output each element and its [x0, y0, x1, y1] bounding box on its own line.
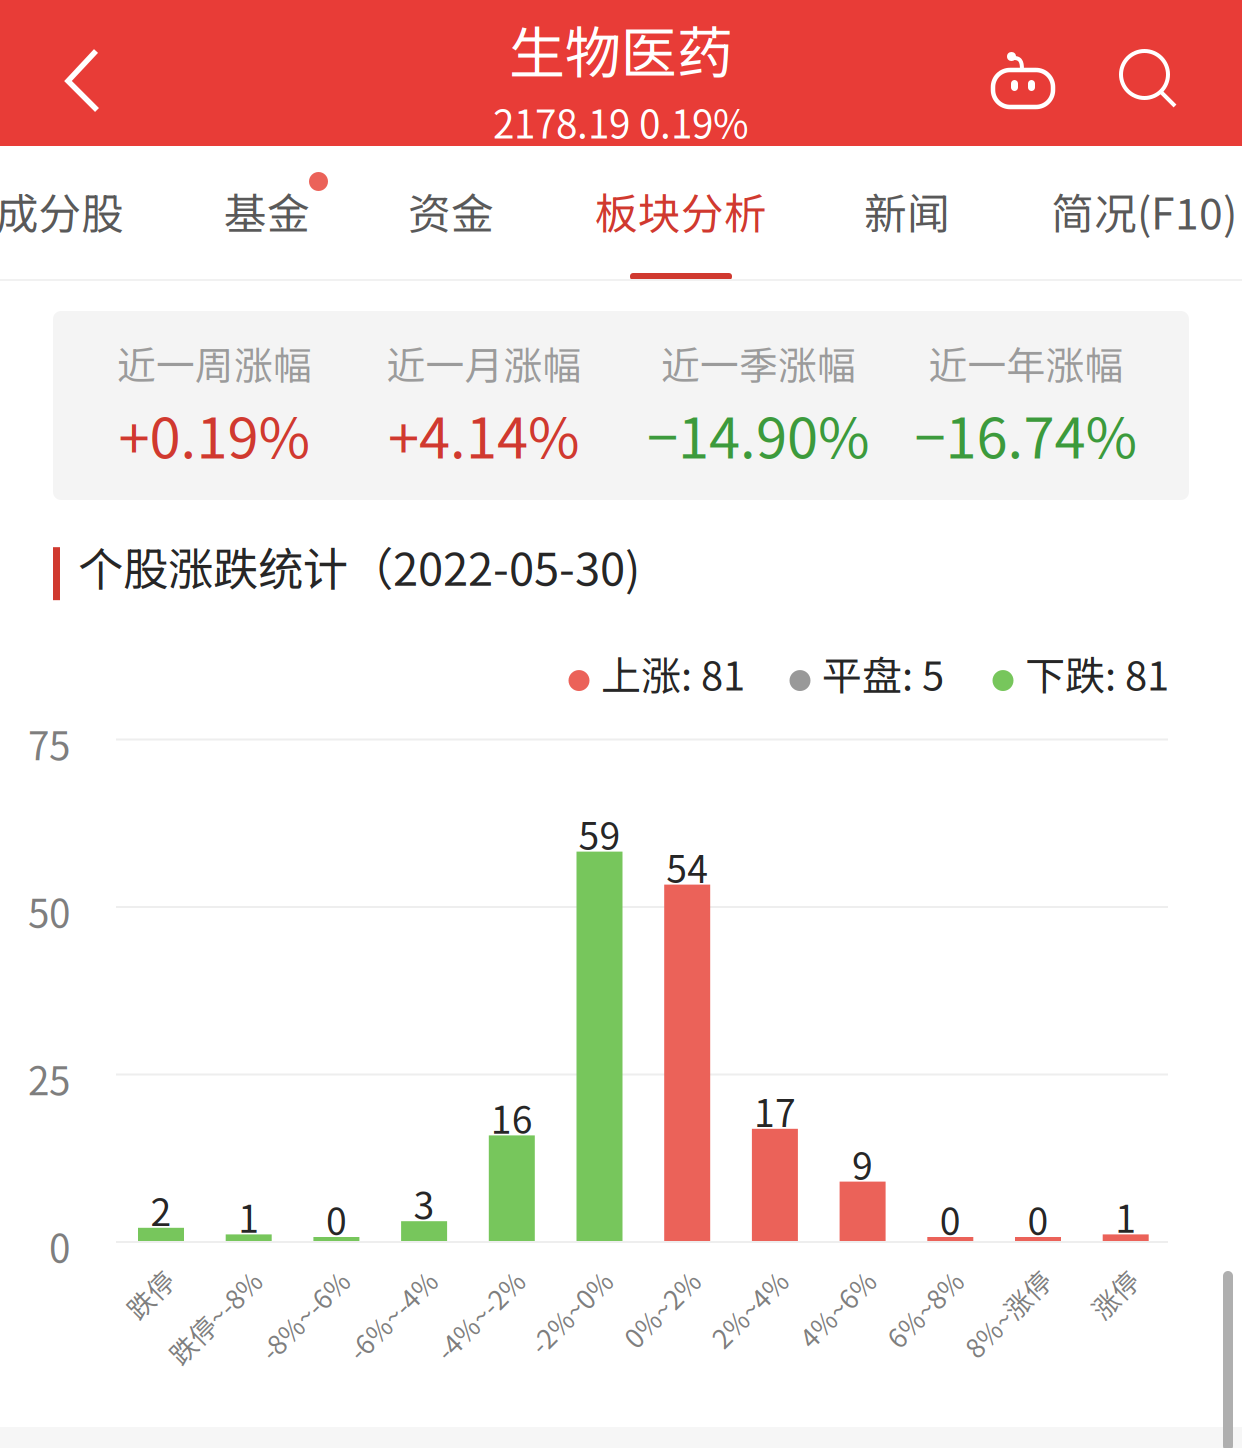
staticText: 16: [491, 1090, 533, 1144]
staticText: 近一周涨幅: [117, 335, 312, 391]
button[interactable]: 板块分析: [541, 146, 821, 281]
button[interactable]: 近一月涨幅: [349, 311, 619, 500]
button[interactable]: 近一年涨幅: [891, 311, 1161, 500]
staticText: 板块分析: [595, 180, 767, 242]
button[interactable]: Back: [0, 0, 140, 146]
staticText: −16.74%: [914, 393, 1137, 475]
staticText: 近一年涨幅: [928, 335, 1123, 391]
staticText: 3: [414, 1176, 435, 1230]
button[interactable]: 新闻: [767, 146, 1047, 281]
staticText: 近一季涨幅: [661, 335, 856, 391]
staticText: 下跌: 81: [1025, 644, 1169, 702]
staticText: 17: [754, 1084, 796, 1138]
staticText: 简况(F10): [1051, 180, 1237, 242]
staticText: 新闻: [864, 180, 950, 242]
staticText: 基金: [224, 180, 310, 242]
button[interactable]: 近一周涨幅: [79, 311, 349, 500]
staticText: 59: [578, 807, 620, 861]
staticText: 1: [1115, 1189, 1136, 1243]
staticText: 跌停~-8%: [139, 1256, 257, 1294]
staticText: −14.90%: [647, 393, 870, 475]
staticText: -4%~-2%: [407, 1256, 520, 1294]
staticText: -2%~0%: [503, 1256, 607, 1294]
staticText: 2%~4%: [688, 1256, 783, 1294]
staticText: 近一月涨幅: [386, 335, 581, 391]
staticText: 成分股: [0, 180, 124, 242]
staticText: 上涨: 81: [601, 644, 745, 702]
button[interactable]: Assistant: [985, 0, 1095, 146]
staticText: 0%~2%: [600, 1256, 695, 1294]
button[interactable]: 资金: [311, 146, 591, 281]
staticText: 2: [150, 1183, 171, 1237]
staticText: 平盘: 5: [822, 644, 944, 702]
staticText: +4.14%: [388, 393, 580, 475]
staticText: 25: [28, 1050, 70, 1106]
staticText: +0.19%: [118, 393, 310, 475]
staticText: -8%~-6%: [231, 1256, 344, 1294]
staticText: 50: [28, 883, 70, 939]
staticText: 涨停: [1080, 1256, 1134, 1294]
button[interactable]: 近一季涨幅: [623, 311, 893, 500]
staticText: 75: [28, 715, 70, 771]
staticText: 0: [1027, 1192, 1048, 1246]
staticText: 0: [940, 1192, 961, 1246]
staticText: 8%~涨停: [937, 1256, 1046, 1294]
staticText: 跌停: [115, 1256, 169, 1294]
staticText: 生物医药: [509, 8, 733, 90]
staticText: -6%~-4%: [319, 1256, 432, 1294]
staticText: 个股涨跌统计（2022-05-30): [78, 533, 640, 599]
staticText: 2178.19 0.19%: [493, 93, 749, 149]
staticText: 54: [666, 840, 708, 894]
staticText: 0: [326, 1192, 347, 1246]
button[interactable]: 成分股: [0, 146, 200, 281]
staticText: 0: [49, 1218, 70, 1274]
button[interactable]: 简况(F10): [1004, 146, 1242, 281]
staticText: 资金: [408, 180, 494, 242]
staticText: 4%~6%: [776, 1256, 871, 1294]
staticText: 6%~8%: [863, 1256, 958, 1294]
button[interactable]: 基金: [127, 146, 407, 281]
button[interactable]: Search: [1119, 49, 1239, 195]
staticText: 9: [852, 1137, 873, 1191]
staticText: 1: [238, 1189, 259, 1243]
